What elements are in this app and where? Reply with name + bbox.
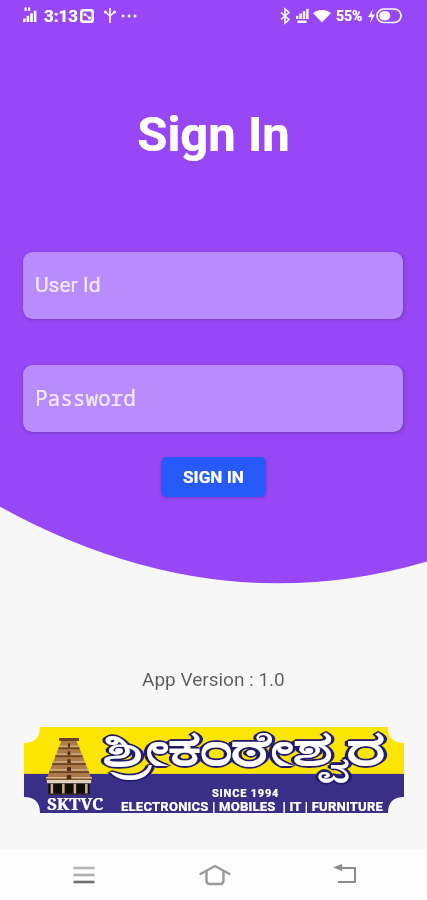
staticText: ಶ್ರೀಕಂಠೇಶ್ವರ [107,727,390,776]
button[interactable]: Back [300,849,393,900]
button[interactable]: Home [168,849,261,900]
button[interactable]: Password [23,365,403,432]
staticText: ಶ್ರೀಕಂಠೇಶ್ವರ [103,727,386,776]
staticText: ಶ್ರೀಕಂಠೇಶ್ವರ [103,726,386,775]
staticText: ಶ್ರೀಕಂಠೇಶ್ವರ [103,725,386,773]
staticText: ಶ್ರೀಕಂಠೇಶ್ವರ [101,727,384,776]
staticText: ಶ್ರೀಕಂಠೇಶ್ವರ [103,727,386,776]
staticText: 55% [336,8,363,24]
button[interactable]: Recent apps [37,849,130,900]
staticText: ಶ್ರೀಕಂಠೇಶ್ವರ [105,727,388,776]
staticText: ಶ್ರೀಕಂಠೇಶ್ವರ [99,727,382,776]
staticText: ಶ್ರೀಕಂಠೇಶ್ವರ [103,728,386,777]
staticText: Sign In [137,106,290,163]
button[interactable]: User Id [23,252,403,319]
staticText: ಶ್ರೀಕಂಠೇಶ್ವರ [103,729,386,778]
staticText: 3:13 [44,6,79,26]
staticText: SINCE 1994 [212,787,280,800]
staticText: ELECTRONICS | MOBILES | IT | FURNITURE [121,799,384,814]
staticText: User Id [35,273,101,298]
staticText: ಶ್ರೀಕಂಠೇಶ್ವರ [101,728,384,777]
staticText: SKTVC [47,792,104,815]
staticText: App Version : 1.0 [142,668,285,690]
staticText: ಶ್ರೀಕಂಠೇಶ್ವರ [105,726,388,775]
button[interactable]: SIGN IN [161,457,266,497]
staticText: SIGN IN [183,467,244,487]
staticText: ಶ್ರೀಕಂಠೇಶ್ವರ [101,726,384,775]
staticText: ಶ್ರೀಕಂಠೇಶ್ವರ [105,728,388,777]
staticText: Password [35,384,136,413]
